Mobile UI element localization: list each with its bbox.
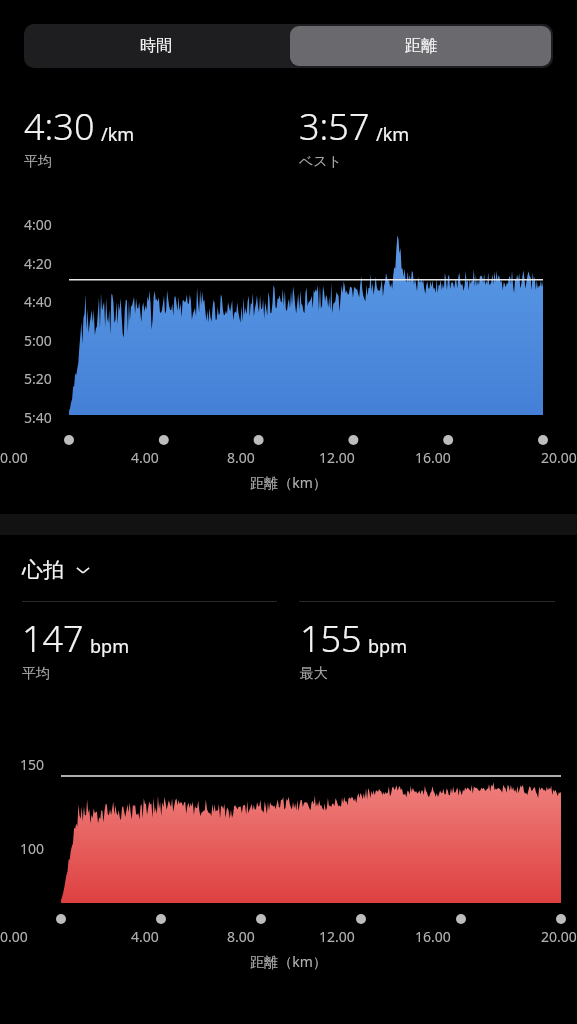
- staticText: 距離（km）: [0, 473, 577, 492]
- staticText: /km: [376, 122, 410, 147]
- staticText: 4.00: [131, 927, 159, 946]
- button[interactable]: 時間: [24, 24, 288, 68]
- staticText: 4:00: [24, 215, 52, 234]
- staticText: 12.00: [319, 448, 355, 467]
- staticText: 4:30: [24, 102, 95, 151]
- staticText: 4:40: [24, 292, 52, 311]
- staticText: 最大: [300, 665, 328, 683]
- staticText: 平均: [22, 665, 50, 683]
- staticText: 3:57: [299, 102, 370, 151]
- staticText: 5:20: [24, 369, 52, 388]
- staticText: 100: [20, 839, 45, 858]
- staticText: 12.00: [319, 927, 355, 946]
- staticText: 平均: [24, 153, 52, 171]
- staticText: 0.00: [0, 927, 28, 946]
- staticText: bpm: [368, 634, 407, 659]
- staticText: 心拍: [22, 557, 64, 583]
- staticText: 8.00: [227, 448, 255, 467]
- staticText: /km: [101, 122, 135, 147]
- staticText: 20.00: [541, 448, 577, 467]
- button[interactable]: 距離: [290, 26, 551, 66]
- staticText: 150: [20, 755, 45, 774]
- staticText: 4:20: [24, 254, 52, 273]
- staticText: bpm: [90, 634, 129, 659]
- staticText: 5:40: [24, 408, 52, 427]
- staticText: 距離: [405, 36, 437, 56]
- staticText: ベスト: [299, 153, 342, 171]
- staticText: 155: [300, 614, 362, 663]
- button[interactable]: 心拍: [22, 557, 92, 583]
- staticText: 16.00: [415, 927, 451, 946]
- staticText: 時間: [140, 36, 172, 56]
- staticText: 147: [22, 614, 84, 663]
- staticText: 20.00: [541, 927, 577, 946]
- staticText: 16.00: [415, 448, 451, 467]
- staticText: 0.00: [0, 448, 28, 467]
- staticText: 距離（km）: [0, 952, 577, 971]
- other: Expand heart rate: [74, 561, 92, 579]
- staticText: 5:00: [24, 331, 52, 350]
- staticText: 4.00: [131, 448, 159, 467]
- staticText: 8.00: [227, 927, 255, 946]
